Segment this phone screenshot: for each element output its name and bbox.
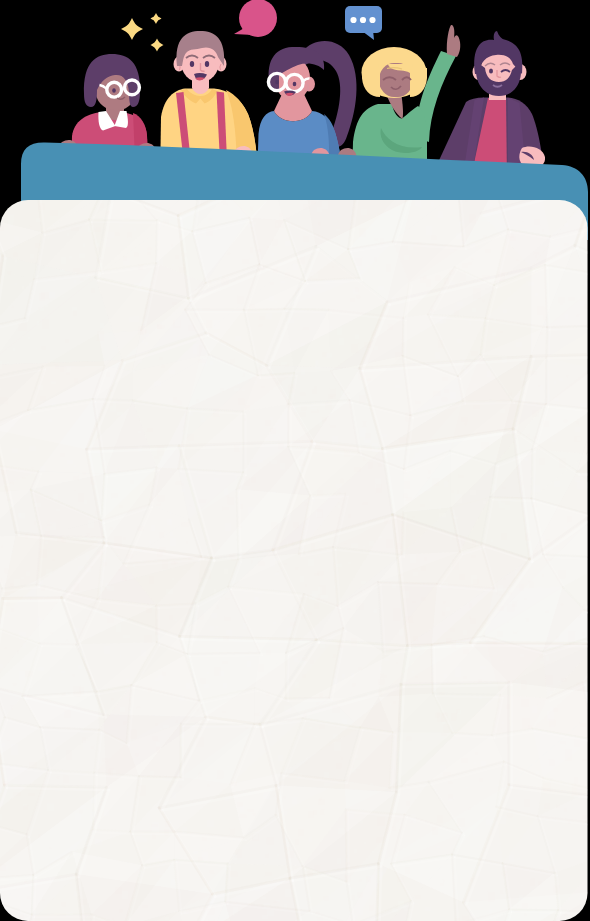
button[interactable] [0, 200, 590, 921]
button[interactable]: Community illustration [0, 0, 590, 200]
